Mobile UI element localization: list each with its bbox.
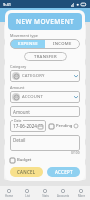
staticText: ACCOUNT (22, 94, 43, 100)
staticText: TRANSFER (34, 54, 57, 60)
staticText: Amount (13, 109, 30, 115)
staticText: Home (5, 194, 13, 198)
other: More (79, 189, 83, 193)
button[interactable]: NEW MOVEMENT (8, 13, 82, 30)
button[interactable]: Detail (10, 135, 80, 151)
staticText: EXPENSE (18, 41, 38, 47)
button[interactable]: Amount (10, 106, 80, 117)
button[interactable]: List (18, 186, 36, 200)
staticText: Amount (10, 85, 25, 90)
button[interactable]: CANCEL (10, 167, 43, 177)
other: Pick date (38, 124, 43, 129)
button[interactable]: CATEGORY (10, 70, 80, 82)
staticText: Detail (13, 137, 26, 143)
button[interactable]: Home (0, 186, 18, 200)
button[interactable]: Budget (10, 157, 32, 163)
staticText: NEW MOVEMENT (16, 17, 75, 26)
staticText: 9:41 (3, 2, 11, 7)
staticText: CANCEL (17, 169, 36, 175)
staticText: Movement type (10, 33, 38, 38)
staticText: CATEGORY (22, 73, 45, 79)
button[interactable]: Pending (49, 123, 80, 129)
other: List (25, 189, 29, 193)
staticText: ACCEPT (55, 169, 73, 175)
staticText: Budget (17, 157, 32, 163)
staticText: Category (10, 64, 27, 69)
staticText: 0/100 (71, 151, 80, 155)
other: Accounts (61, 189, 65, 193)
button[interactable]: Stats (36, 186, 54, 200)
button[interactable]: 17-06-2024 (10, 120, 46, 132)
staticText: Date (14, 118, 22, 123)
button[interactable]: EXPENSE (10, 39, 45, 49)
button[interactable]: More (72, 186, 90, 200)
button[interactable]: ACCEPT (47, 167, 80, 177)
staticText: Stats (42, 194, 49, 198)
button[interactable]: Accounts (54, 186, 72, 200)
staticText: 17-06-2024 (13, 123, 37, 129)
other: Home (7, 189, 11, 193)
staticText: List (25, 194, 30, 198)
staticText: More (78, 194, 85, 198)
staticText: Accounts (57, 194, 69, 198)
button[interactable]: ACCOUNT (10, 91, 80, 103)
other: Open CATEGORY list (74, 74, 78, 78)
staticText: Pending (56, 123, 73, 129)
staticText: INCOME (53, 41, 72, 47)
other: Stats (43, 189, 47, 193)
button[interactable]: TRANSFER (24, 52, 67, 61)
other: Info (74, 124, 78, 128)
button[interactable]: INCOME (45, 39, 80, 49)
other: Open ACCOUNT list (74, 95, 78, 99)
